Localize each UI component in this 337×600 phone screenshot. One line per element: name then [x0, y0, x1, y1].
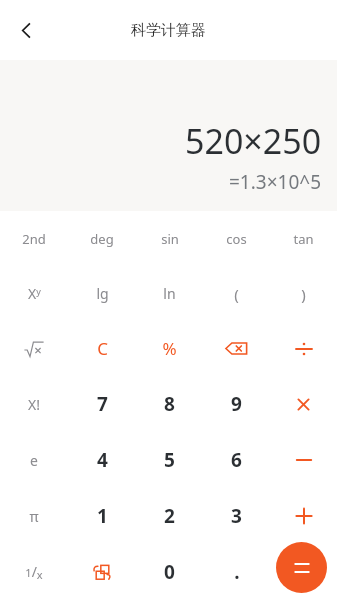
staticText: .	[234, 559, 240, 585]
staticText: ln	[163, 284, 176, 303]
button[interactable]: percent	[136, 321, 203, 376]
button[interactable]: Unit conversion	[68, 544, 136, 600]
button[interactable]: 2	[136, 488, 203, 544]
button[interactable]: 5	[136, 432, 203, 488]
staticText: 1/x	[25, 562, 43, 583]
staticText: 6	[231, 447, 242, 473]
staticText: 8	[164, 391, 175, 417]
staticText: 2	[164, 503, 175, 529]
button[interactable]: tan	[270, 211, 337, 266]
staticText: 1	[97, 503, 108, 529]
button[interactable]: Back	[4, 8, 48, 52]
button[interactable]: 1	[68, 488, 136, 544]
staticText: sin	[161, 230, 179, 248]
button[interactable]: decimal point	[203, 544, 270, 600]
button[interactable]: 0	[136, 544, 203, 600]
staticText: C	[97, 337, 108, 360]
button[interactable]: Backspace	[203, 321, 270, 376]
button[interactable]: open parenthesis	[203, 266, 270, 321]
button[interactable]: plus	[270, 488, 337, 544]
staticText: 4	[97, 447, 108, 473]
staticText: 2nd	[22, 230, 46, 248]
button[interactable]: factorial	[0, 376, 68, 432]
staticText: )	[301, 284, 306, 304]
staticText: Xy	[28, 284, 41, 303]
staticText: 科学计算器	[131, 21, 206, 40]
button[interactable]: divide	[270, 321, 337, 376]
staticText: %	[162, 337, 177, 360]
button[interactable]: 7	[68, 376, 136, 432]
button[interactable]: close parenthesis	[270, 266, 337, 321]
button[interactable]: 6	[203, 432, 270, 488]
button[interactable]: 2nd	[0, 211, 68, 266]
button[interactable]: Equals	[276, 542, 327, 593]
staticText: 5	[164, 447, 175, 473]
staticText: 520×250	[185, 118, 322, 164]
staticText: tan	[293, 230, 314, 248]
staticText: 7	[97, 391, 108, 417]
staticText: 3	[231, 503, 242, 529]
button[interactable]: cos	[203, 211, 270, 266]
button[interactable]: reciprocal	[0, 544, 68, 600]
button[interactable]: sin	[136, 211, 203, 266]
staticText: 9	[231, 391, 242, 417]
button[interactable]: lg	[68, 266, 136, 321]
button[interactable]: minus	[270, 432, 337, 488]
staticText: (	[234, 284, 239, 304]
staticText: deg	[90, 230, 114, 248]
button[interactable]: pi	[0, 488, 68, 544]
staticText: π	[29, 507, 39, 526]
button[interactable]: ln	[136, 266, 203, 321]
button[interactable]: x to the power of y	[0, 266, 68, 321]
staticText: =1.3×10^5	[229, 169, 322, 195]
button[interactable]: 8	[136, 376, 203, 432]
button[interactable]: clear	[68, 321, 136, 376]
staticText: lg	[96, 284, 109, 303]
button[interactable]: 9	[203, 376, 270, 432]
button[interactable]: square root	[0, 321, 68, 376]
staticText: 0	[164, 559, 175, 585]
button[interactable]: deg	[68, 211, 136, 266]
staticText: cos	[226, 230, 247, 248]
button[interactable]: 4	[68, 432, 136, 488]
button[interactable]: e	[0, 432, 68, 488]
staticText: X!	[28, 395, 40, 414]
button[interactable]: 3	[203, 488, 270, 544]
button[interactable]: multiply	[270, 376, 337, 432]
staticText: e	[30, 451, 38, 470]
